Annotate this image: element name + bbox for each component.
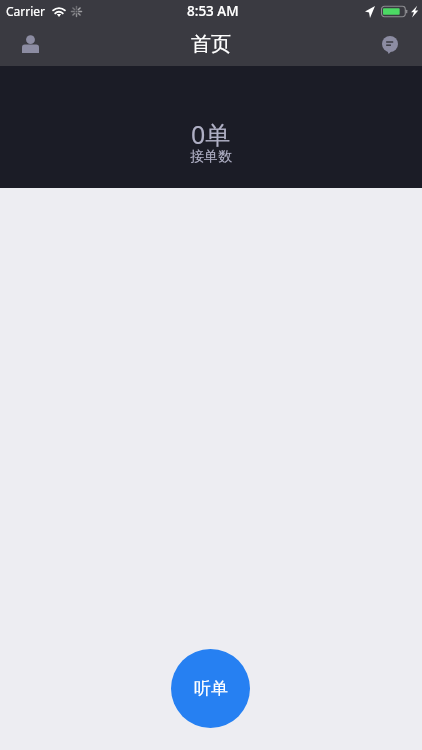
staticText: 听单 (194, 678, 228, 699)
staticText: 接单数 (190, 148, 232, 166)
button[interactable]: 听单 (171, 649, 250, 728)
button[interactable]: Messages (374, 28, 406, 60)
staticText: 0单 (191, 117, 231, 151)
staticText: 8:53 AM (187, 2, 239, 20)
staticText: Carrier (6, 3, 46, 19)
staticText: 首页 (191, 32, 231, 57)
button[interactable]: Profile (14, 28, 46, 60)
